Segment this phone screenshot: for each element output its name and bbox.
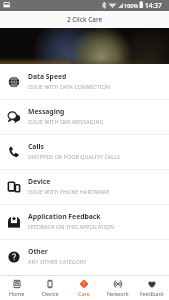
- staticText: 100%: [124, 2, 139, 9]
- staticText: ISSUE WITH PHONE HARDWARE: [28, 188, 110, 195]
- button[interactable]: Messaging: [0, 100, 169, 134]
- button[interactable]: Device: [0, 170, 169, 204]
- staticText: 2 Click Care: [67, 15, 103, 24]
- staticText: Feedback: [140, 290, 164, 297]
- staticText: Application Feedback: [28, 212, 101, 221]
- button[interactable]: Network: [101, 276, 135, 300]
- button[interactable]: Calls: [0, 135, 169, 169]
- staticText: Messaging: [28, 107, 65, 116]
- button[interactable]: Other: [0, 240, 169, 274]
- button[interactable]: Care: [67, 276, 101, 300]
- button[interactable]: Home: [0, 276, 33, 300]
- staticText: ANY OTHER CATEGORY: [28, 258, 87, 265]
- staticText: DROPPED OR POOR QUALITY CALLS: [28, 153, 121, 160]
- staticText: Home: [9, 290, 25, 297]
- staticText: 14:37: [145, 1, 162, 10]
- staticText: Device: [28, 177, 51, 186]
- staticText: Network: [107, 290, 129, 297]
- staticText: Calls: [28, 142, 44, 151]
- button[interactable]: Feedback: [135, 276, 169, 300]
- staticText: ISSUE WITH DATA CONNECTION: [28, 83, 111, 90]
- staticText: Device: [42, 290, 59, 297]
- staticText: Other: [28, 247, 48, 256]
- staticText: ISSUE WITH SMS MESSAGING: [28, 118, 104, 125]
- staticText: Care: [78, 290, 90, 297]
- button[interactable]: Data Speed: [0, 65, 169, 99]
- staticText: FEEDBACK ON THIS APPLICATION: [28, 223, 115, 230]
- button[interactable]: Application Feedback: [0, 205, 169, 239]
- staticText: Data Speed: [28, 72, 67, 81]
- button[interactable]: Device: [33, 276, 67, 300]
